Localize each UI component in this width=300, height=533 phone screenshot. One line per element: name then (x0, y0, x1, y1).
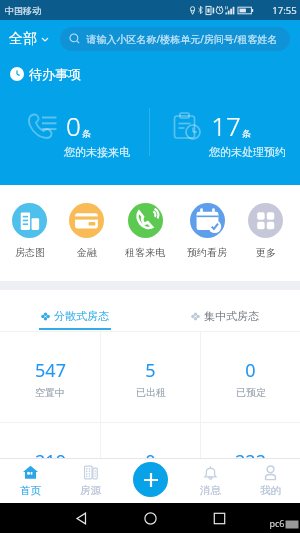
staticText: 请输入小区名称/楼栋单元/房间号/租客姓名 (86, 32, 278, 46)
staticText: 中国移动 (5, 5, 41, 16)
staticText: 0 (145, 449, 156, 474)
button[interactable]: Home (137, 505, 163, 531)
button[interactable]: 5 (101, 332, 200, 422)
button[interactable]: 全部 (0, 30, 60, 48)
staticText: 0 (66, 108, 81, 143)
button[interactable]: 金融 (69, 203, 104, 259)
button[interactable]: 我的 (240, 459, 300, 501)
staticText: 17:55 (272, 4, 297, 17)
staticText: 预约看房 (187, 246, 227, 259)
button[interactable]: 首页 (0, 459, 60, 501)
staticText: 集中式房态 (204, 309, 259, 323)
button[interactable]: 222 (201, 423, 300, 513)
button[interactable]: 消息 (180, 459, 240, 501)
staticText: 维修中 (136, 477, 166, 490)
button[interactable]: 房态图 (12, 203, 47, 259)
button[interactable]: Add (133, 462, 168, 497)
staticText: 我的 (260, 484, 281, 497)
staticText: 分散式房态 (54, 309, 109, 323)
button[interactable]: 预约看房 (187, 203, 227, 259)
staticText: 待办事项 (29, 66, 81, 82)
staticText: 您的未处理预约 (209, 145, 286, 159)
button[interactable]: Back (68, 505, 94, 531)
staticText: 已出租 (136, 386, 166, 399)
staticText: 更多 (256, 246, 276, 259)
staticText: 待入住 (35, 477, 65, 490)
staticText: 空置中 (35, 386, 65, 399)
staticText: 17 (211, 108, 241, 143)
staticText: 5 (145, 358, 156, 383)
staticText: 金融 (77, 246, 97, 259)
button[interactable]: 租客来电 (125, 203, 165, 259)
staticText: 首页 (20, 484, 41, 497)
button[interactable]: 0 (101, 423, 200, 513)
button[interactable]: 房源 (60, 459, 120, 501)
button[interactable]: 分散式房态 (0, 290, 150, 332)
staticText: 条 (242, 128, 251, 139)
staticText: 全部 (9, 30, 37, 48)
staticText: 房源 (80, 484, 101, 497)
button[interactable]: 547 (0, 332, 100, 422)
staticText: 547 (35, 358, 66, 383)
button[interactable]: 0 (201, 332, 300, 422)
staticText: 0 (245, 358, 256, 383)
staticText: 已预定 (236, 386, 266, 399)
button[interactable]: 更多 (248, 203, 283, 259)
button[interactable]: Recents (206, 505, 232, 531)
staticText: 222 (235, 449, 266, 474)
button[interactable]: 219 (0, 423, 100, 513)
staticText: 您的未接来电 (64, 145, 130, 159)
staticText: 219 (35, 449, 66, 474)
button[interactable]: 请输入小区名称/楼栋单元/房间号/租客姓名 (60, 27, 290, 51)
staticText: 房态图 (15, 246, 45, 259)
staticText: 条 (82, 128, 91, 139)
staticText: pc6 (269, 517, 285, 529)
staticText: 租客来电 (125, 246, 165, 259)
button[interactable]: 集中式房态 (150, 290, 300, 332)
staticText: 消息 (200, 484, 221, 497)
